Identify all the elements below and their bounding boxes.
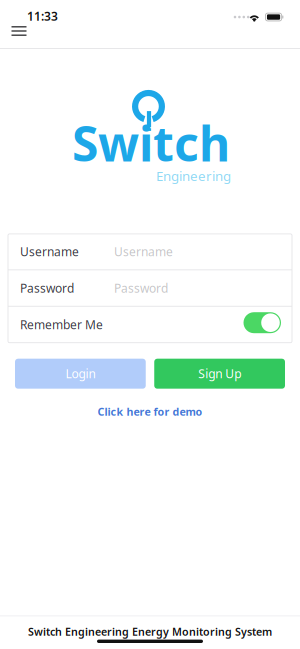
- staticText: Password: [114, 280, 168, 296]
- staticText: Username: [114, 244, 173, 260]
- staticText: 11:33: [27, 8, 58, 24]
- button[interactable]: Menu: [4, 22, 34, 48]
- staticText: Click here for demo: [97, 405, 202, 419]
- staticText: Switch Engineering Energy Monitoring Sys…: [28, 624, 272, 639]
- staticText: Password: [20, 280, 74, 296]
- staticText: Engineering: [156, 167, 231, 185]
- staticText: Sign Up: [198, 366, 241, 382]
- staticText: Username: [20, 244, 79, 260]
- staticText: Remember Me: [20, 317, 103, 333]
- staticText: Switch: [72, 111, 230, 175]
- button[interactable]: Sign Up: [154, 359, 285, 389]
- button[interactable]: Login: [15, 359, 146, 389]
- staticText: Login: [65, 366, 95, 382]
- button[interactable]: Click here for demo: [97, 405, 202, 419]
- button[interactable]: Remember Me: [243, 314, 281, 335]
